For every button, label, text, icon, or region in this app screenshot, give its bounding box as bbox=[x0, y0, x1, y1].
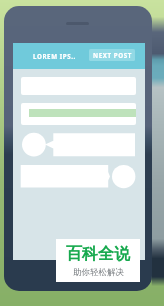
button[interactable]: NEXT POST bbox=[89, 49, 135, 61]
button[interactable]: 百科全说 bbox=[56, 239, 140, 282]
button[interactable] bbox=[21, 103, 136, 125]
staticText: 助你轻松解决 bbox=[73, 267, 124, 278]
staticText: 百科全说 bbox=[66, 244, 130, 264]
staticText: LOREM IPS.. bbox=[33, 52, 76, 60]
staticText: NEXT POST bbox=[93, 51, 132, 59]
